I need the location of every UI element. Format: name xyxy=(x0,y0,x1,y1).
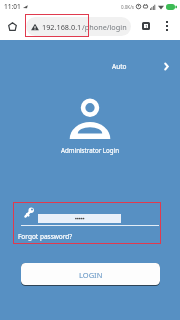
button[interactable]: Home xyxy=(4,18,21,35)
staticText: /phone/login xyxy=(82,22,127,32)
staticText: 0.0K/s xyxy=(121,4,134,10)
staticText: Administrator Login xyxy=(0,146,180,154)
staticText: 192.168.0.1 xyxy=(42,22,82,32)
button[interactable]: Forgot password? xyxy=(18,232,73,241)
button[interactable]: Tabs xyxy=(137,17,154,34)
button[interactable]: More options xyxy=(158,17,175,34)
staticText: LOGIN xyxy=(79,270,103,280)
button[interactable]: LOGIN xyxy=(21,263,160,286)
staticText: 1 xyxy=(145,23,148,30)
button[interactable]: 192.168.0.1 xyxy=(26,17,131,36)
button[interactable] xyxy=(38,214,121,223)
button[interactable]: Auto xyxy=(104,55,176,77)
staticText: 11:01 xyxy=(4,2,21,11)
staticText: Auto xyxy=(112,62,127,71)
